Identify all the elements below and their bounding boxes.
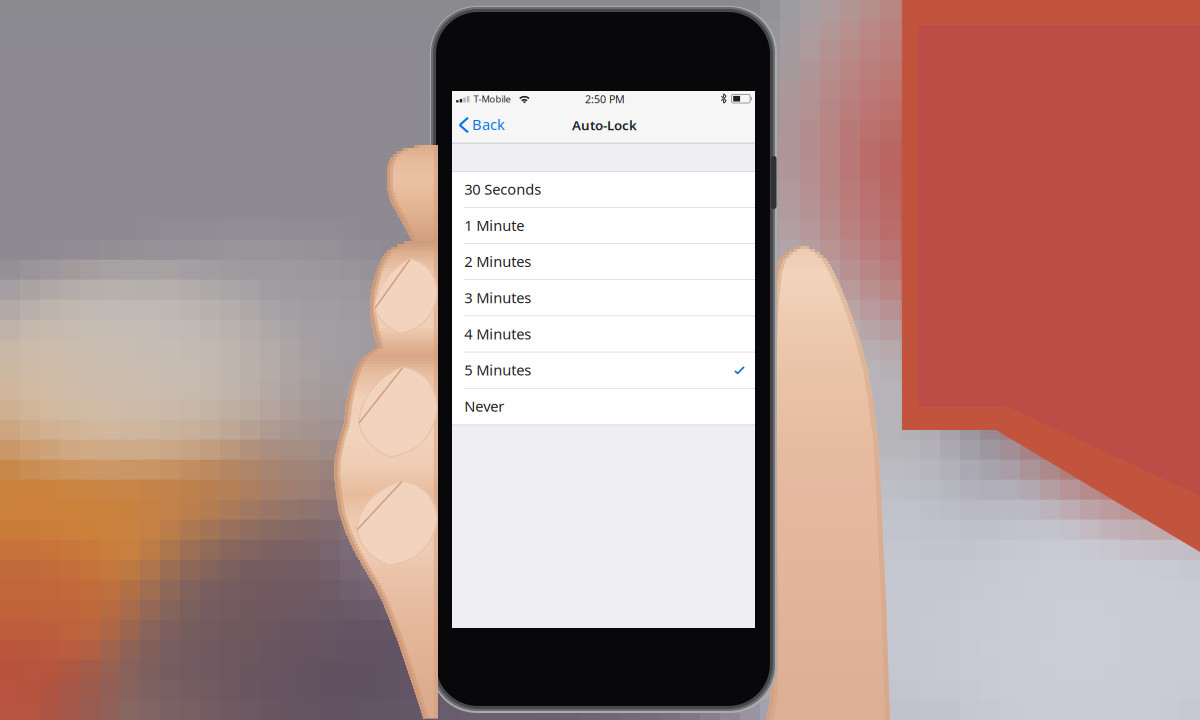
button[interactable]: 5 Minutes [452, 352, 755, 388]
button[interactable]: 1 Minute [452, 208, 755, 244]
staticText: 2:50 PM [585, 92, 625, 106]
staticText: Auto-Lock [572, 116, 637, 134]
staticText: 4 Minutes [464, 324, 531, 343]
button[interactable]: 2 Minutes [452, 244, 755, 280]
staticText: 30 Seconds [464, 179, 541, 199]
button[interactable]: Back [452, 107, 508, 143]
staticText: 2 Minutes [464, 252, 531, 271]
staticText: 1 Minute [464, 215, 524, 235]
staticText: T-Mobile [473, 93, 510, 105]
button[interactable]: 4 Minutes [452, 316, 755, 352]
staticText: Never [464, 396, 504, 416]
button[interactable]: 3 Minutes [452, 280, 755, 316]
staticText: 5 Minutes [464, 360, 531, 380]
button[interactable]: Never [452, 388, 755, 425]
staticText: Back [472, 115, 505, 134]
button[interactable]: 30 Seconds [452, 172, 755, 208]
staticText: 3 Minutes [464, 288, 531, 307]
